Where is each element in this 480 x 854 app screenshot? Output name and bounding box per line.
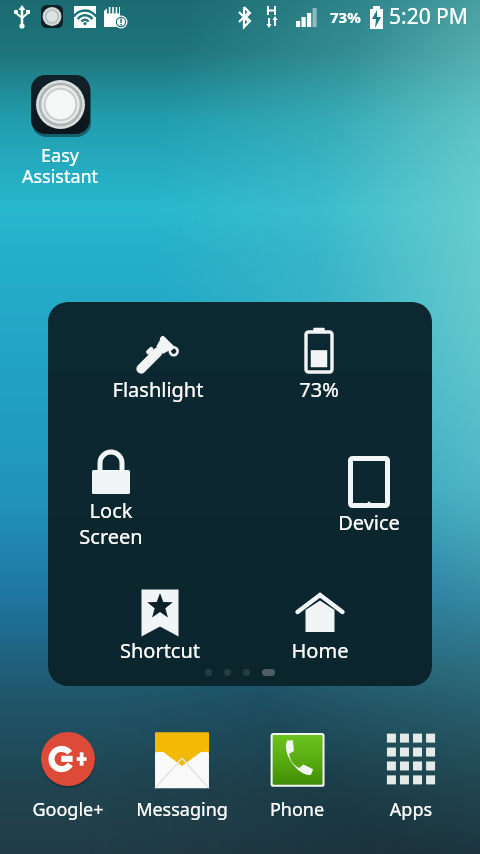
staticText: Flashlight [98, 376, 218, 403]
button[interactable]: Easy Assistant [6, 75, 114, 188]
button[interactable] [205, 669, 212, 676]
button[interactable]: Shortcut [100, 637, 220, 664]
button[interactable] [259, 324, 379, 404]
staticText: Google+ [11, 797, 125, 822]
button[interactable] [309, 456, 429, 536]
button[interactable]: Messaging [125, 730, 239, 822]
button[interactable]: Lock Screen [51, 497, 171, 549]
button[interactable]: Home [260, 637, 380, 664]
staticText: 5:20 PM [389, 2, 468, 31]
staticText: Messaging [125, 797, 239, 822]
button[interactable] [93, 331, 213, 411]
button[interactable]: Google+ [11, 730, 125, 822]
staticText: 73% [330, 7, 361, 27]
button[interactable] [224, 669, 231, 676]
staticText: Home [260, 637, 380, 664]
staticText: Apps [354, 797, 468, 822]
staticText: Phone [240, 797, 354, 822]
staticText: Easy Assistant [6, 143, 114, 188]
button[interactable] [51, 444, 171, 524]
button[interactable]: Flashlight [98, 376, 218, 403]
staticText: Lock Screen [51, 497, 171, 549]
staticText: Device [309, 509, 429, 536]
button[interactable] [243, 669, 250, 676]
button[interactable]: Apps [354, 730, 468, 822]
button[interactable]: Phone [240, 730, 354, 822]
button[interactable] [260, 587, 380, 667]
button[interactable] [262, 669, 275, 676]
button[interactable]: Device [309, 509, 429, 536]
staticText: 73% [259, 376, 379, 403]
staticText: Shortcut [100, 637, 220, 664]
button[interactable] [100, 587, 220, 667]
button[interactable]: 73% [259, 376, 379, 403]
